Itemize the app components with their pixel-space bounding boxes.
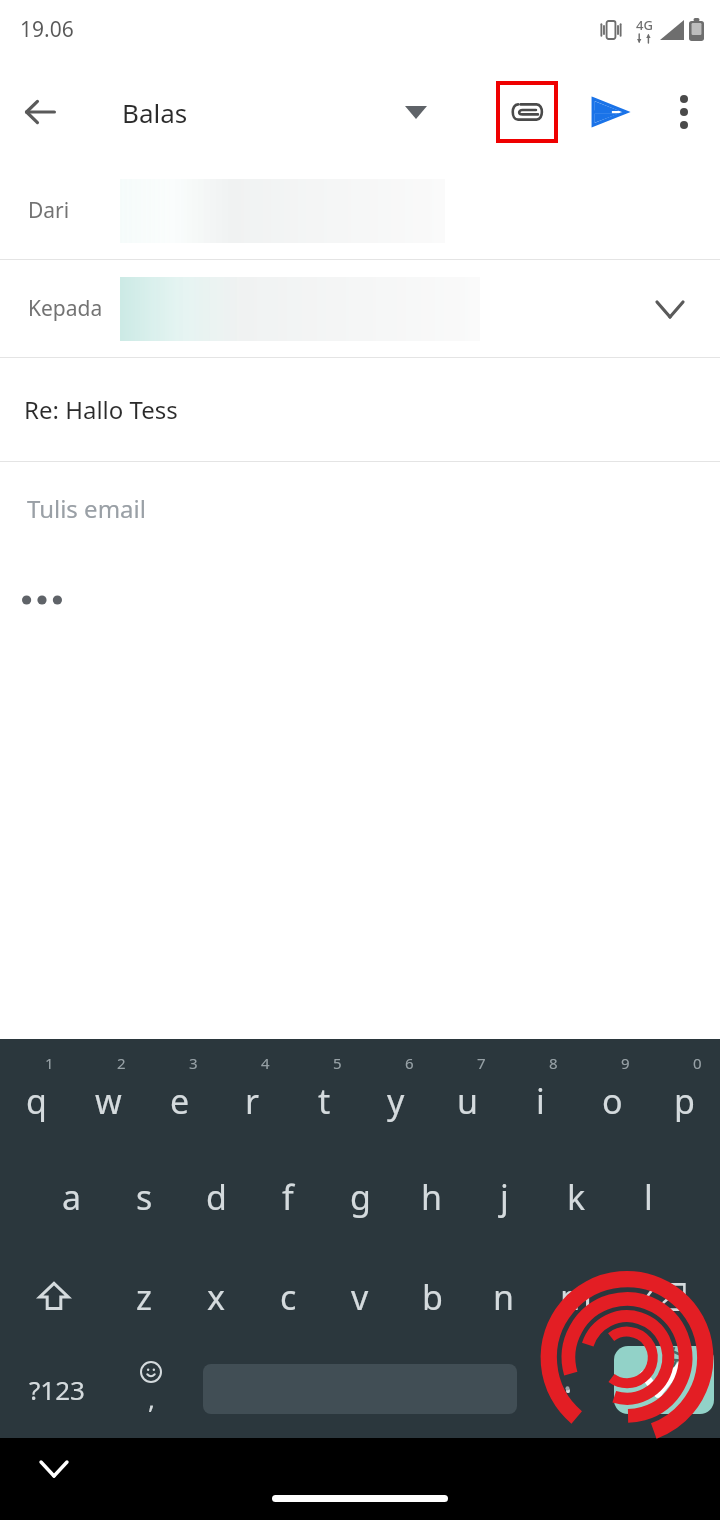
button[interactable]: .: [530, 1347, 606, 1431]
staticText: e: [170, 1078, 190, 1124]
button[interactable]: k: [540, 1147, 612, 1247]
button[interactable]: Back: [12, 84, 68, 140]
staticText: o: [602, 1078, 623, 1124]
staticText: 4: [261, 1053, 270, 1073]
button[interactable]: 8: [504, 1047, 576, 1147]
staticText: q: [26, 1078, 47, 1124]
button[interactable]: Emoji: [113, 1347, 189, 1431]
button[interactable]: z: [108, 1247, 180, 1347]
staticText: 2: [117, 1053, 126, 1073]
button[interactable]: a: [36, 1147, 108, 1247]
staticText: n: [493, 1274, 515, 1320]
staticText: l: [644, 1174, 653, 1220]
button[interactable]: l: [612, 1147, 684, 1247]
button[interactable]: b: [396, 1247, 468, 1347]
staticText: w: [95, 1078, 122, 1124]
staticText: s: [136, 1174, 153, 1220]
staticText: Tulis email: [27, 492, 146, 525]
button[interactable]: Home: [272, 1495, 448, 1502]
button[interactable]: [189, 1347, 530, 1431]
staticText: 9: [621, 1053, 630, 1073]
button[interactable]: f: [252, 1147, 324, 1247]
staticText: b: [422, 1274, 443, 1320]
button[interactable]: c: [252, 1247, 324, 1347]
button[interactable]: Send: [580, 83, 638, 141]
staticText: d: [206, 1174, 227, 1220]
staticText: .: [564, 1361, 573, 1402]
button[interactable]: Show quoted text: [22, 580, 78, 620]
staticText: Kepada: [28, 294, 103, 323]
staticText: h: [421, 1174, 443, 1220]
staticText: z: [136, 1274, 152, 1320]
staticText: x: [207, 1274, 225, 1320]
button[interactable]: 7: [432, 1047, 504, 1147]
button[interactable]: s: [108, 1147, 180, 1247]
button[interactable]: 6: [360, 1047, 432, 1147]
button[interactable]: 0: [648, 1047, 720, 1147]
staticText: k: [567, 1174, 586, 1220]
staticText: ?123: [29, 1372, 85, 1407]
staticText: Dari: [28, 196, 70, 225]
staticText: 8: [549, 1053, 558, 1073]
staticText: 19.06: [20, 15, 74, 44]
button[interactable]: 4: [216, 1047, 288, 1147]
staticText: p: [674, 1078, 695, 1124]
staticText: 5: [333, 1053, 342, 1073]
button[interactable]: h: [396, 1147, 468, 1247]
staticText: 3: [189, 1053, 198, 1073]
button[interactable]: Backspace: [612, 1247, 720, 1347]
button[interactable]: 1: [0, 1047, 72, 1147]
staticText: c: [280, 1274, 297, 1320]
button[interactable]: ?123: [0, 1347, 113, 1431]
button[interactable]: Hide keyboard: [26, 1441, 82, 1497]
button[interactable]: Shift: [0, 1247, 108, 1347]
button[interactable]: g: [324, 1147, 396, 1247]
button[interactable]: 9: [576, 1047, 648, 1147]
staticText: Balas: [122, 95, 188, 130]
staticText: r: [245, 1078, 260, 1124]
button[interactable]: 2: [72, 1047, 144, 1147]
button[interactable]: v: [324, 1247, 396, 1347]
button[interactable]: Kepada: [0, 260, 720, 357]
staticText: 4G: [636, 16, 653, 34]
button[interactable]: Dari: [0, 162, 720, 259]
button[interactable]: Expand reply options: [388, 84, 444, 140]
button[interactable]: Tulis email: [0, 462, 720, 1043]
staticText: ,: [148, 1381, 155, 1416]
staticText: i: [536, 1078, 545, 1124]
button[interactable]: 5: [288, 1047, 360, 1147]
button[interactable]: 3: [144, 1047, 216, 1147]
button[interactable]: Show Cc and Bcc: [644, 283, 696, 335]
staticText: 7: [477, 1053, 486, 1073]
button[interactable]: n: [468, 1247, 540, 1347]
staticText: STAT: [653, 1346, 689, 1388]
button[interactable]: More options: [656, 84, 712, 140]
staticText: y: [387, 1078, 405, 1124]
button[interactable]: m: [540, 1247, 612, 1347]
button[interactable]: Re: Hallo Tess: [0, 358, 720, 461]
staticText: v: [351, 1274, 369, 1320]
button[interactable]: x: [180, 1247, 252, 1347]
staticText: Re: Hallo Tess: [24, 393, 178, 426]
staticText: 0: [693, 1053, 702, 1073]
staticText: f: [282, 1174, 294, 1220]
staticText: j: [500, 1174, 509, 1220]
staticText: u: [457, 1078, 479, 1124]
staticText: g: [350, 1174, 371, 1220]
staticText: t: [318, 1078, 331, 1124]
button[interactable]: d: [180, 1147, 252, 1247]
button[interactable]: Attach file: [498, 83, 556, 141]
staticText: a: [62, 1174, 82, 1220]
button[interactable]: Enter: [606, 1347, 720, 1431]
staticText: m: [560, 1274, 592, 1320]
staticText: 1: [45, 1053, 54, 1073]
staticText: 6: [405, 1053, 414, 1073]
button[interactable]: j: [468, 1147, 540, 1247]
